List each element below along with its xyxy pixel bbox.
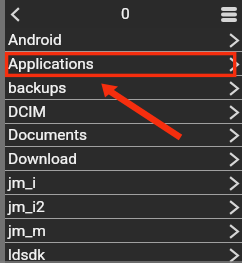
button[interactable]: Android	[0, 28, 242, 52]
staticText: Applications	[8, 55, 94, 73]
button[interactable]: jm_i2	[0, 195, 242, 219]
button[interactable]: Menu	[216, 0, 242, 28]
button[interactable]: Download	[0, 147, 242, 171]
staticText: Documents	[8, 126, 88, 144]
button[interactable]: jm_i	[0, 171, 242, 195]
staticText: ldsdk	[8, 246, 46, 263]
button[interactable]: ldsdk	[0, 243, 242, 263]
staticText: Android	[8, 31, 62, 49]
staticText: DCIM	[8, 103, 47, 121]
button[interactable]: Documents	[0, 123, 242, 147]
button[interactable]: Back	[5, 0, 26, 28]
button[interactable]: Applications	[0, 52, 242, 76]
button[interactable]: jm_m	[0, 219, 242, 243]
staticText: 0	[121, 5, 130, 23]
staticText: backups	[8, 79, 67, 97]
staticText: Download	[8, 150, 78, 168]
button[interactable]: backups	[0, 76, 242, 100]
staticText: jm_m	[8, 222, 46, 240]
button[interactable]: DCIM	[0, 100, 242, 124]
staticText: jm_i	[8, 174, 37, 192]
staticText: jm_i2	[8, 198, 45, 216]
